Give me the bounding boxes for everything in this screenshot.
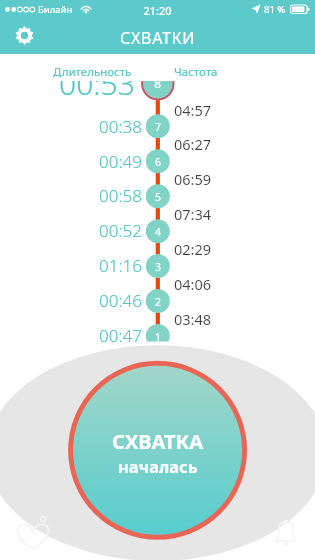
- button[interactable]: 01:16: [0, 254, 142, 277]
- staticText: СХВАТКА: [112, 428, 204, 455]
- button[interactable]: 00:46: [0, 289, 142, 312]
- button[interactable]: Settings: [14, 25, 35, 46]
- staticText: СХВАТКИ: [0, 27, 315, 49]
- staticText: 1: [155, 330, 162, 342]
- staticText: 07:34: [174, 204, 212, 224]
- staticText: 6: [155, 155, 162, 169]
- staticText: 3: [155, 260, 162, 274]
- staticText: 2: [155, 295, 162, 309]
- button[interactable]: 00:47: [0, 324, 142, 342]
- staticText: 03:48: [174, 309, 212, 329]
- staticText: 02:29: [174, 239, 212, 259]
- staticText: 04:57: [174, 100, 212, 120]
- button[interactable]: 00:52: [0, 219, 142, 242]
- button[interactable]: 00:53: [0, 81, 135, 104]
- staticText: 00:38: [99, 115, 142, 138]
- button[interactable]: 00:38: [0, 115, 142, 138]
- staticText: Длительность: [53, 64, 132, 80]
- staticText: 00:53: [59, 81, 135, 104]
- button[interactable]: 00:58: [0, 184, 142, 207]
- staticText: началась: [118, 455, 198, 477]
- staticText: 81 %: [264, 3, 286, 16]
- staticText: 21:20: [0, 3, 315, 18]
- staticText: 01:16: [99, 254, 142, 277]
- staticText: 00:49: [99, 150, 142, 173]
- staticText: 5: [155, 190, 162, 204]
- staticText: Билайн: [38, 3, 73, 16]
- staticText: 04:06: [174, 274, 212, 294]
- button[interactable]: СХВАТКА: [71, 363, 245, 537]
- staticText: 4: [155, 225, 162, 239]
- staticText: 00:58: [99, 184, 142, 207]
- staticText: 00:52: [99, 219, 142, 242]
- staticText: 00:47: [99, 324, 142, 342]
- staticText: 7: [155, 120, 162, 134]
- staticText: 06:27: [174, 134, 212, 154]
- staticText: 00:46: [99, 289, 142, 312]
- staticText: 06:59: [174, 169, 212, 189]
- staticText: Частота: [174, 64, 218, 80]
- staticText: 8: [154, 81, 162, 92]
- button[interactable]: 00:49: [0, 150, 142, 173]
